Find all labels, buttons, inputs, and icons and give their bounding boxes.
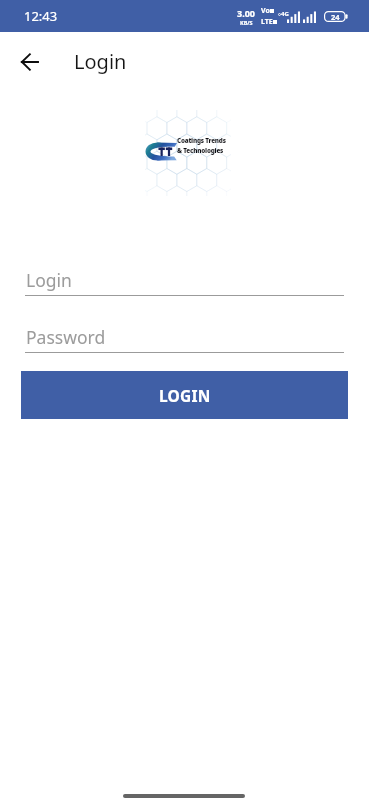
staticText: 24 bbox=[331, 12, 340, 22]
button[interactable]: Login bbox=[25, 268, 344, 296]
staticText: KB/S bbox=[240, 19, 253, 26]
staticText: Login bbox=[26, 268, 72, 292]
staticText: & Technologies bbox=[177, 146, 224, 155]
staticText: 4G bbox=[281, 10, 289, 18]
staticText: Coatings Trends bbox=[177, 136, 226, 145]
button[interactable]: Back bbox=[10, 43, 48, 81]
staticText: LTE bbox=[261, 17, 273, 27]
staticText: LOGIN bbox=[159, 385, 211, 406]
staticText: 12:43 bbox=[24, 7, 58, 25]
staticText: Password bbox=[26, 325, 106, 349]
staticText: Login bbox=[74, 48, 127, 75]
staticText: 3.00 bbox=[237, 7, 255, 19]
button[interactable]: Password bbox=[25, 325, 344, 353]
button[interactable]: LOGIN bbox=[21, 371, 348, 419]
staticText: Vo bbox=[261, 6, 270, 16]
